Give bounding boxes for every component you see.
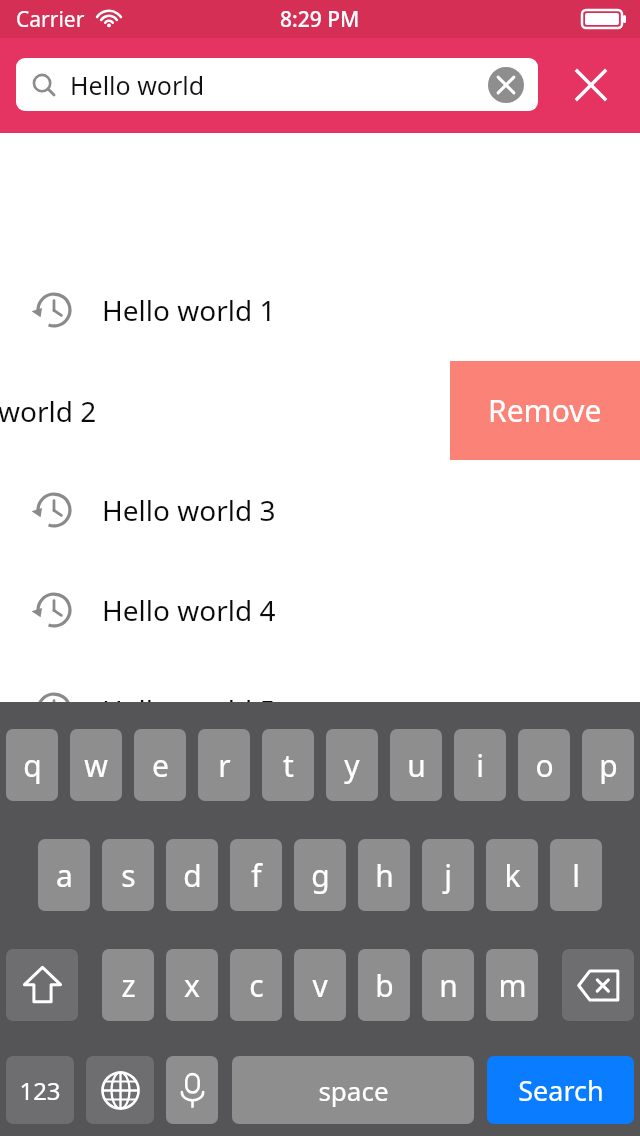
staticText: z — [121, 965, 136, 1006]
staticText: Hello world 3 — [102, 491, 276, 529]
button[interactable]: d — [166, 839, 218, 911]
staticText: space — [318, 1073, 389, 1108]
button[interactable]: Search — [487, 1056, 634, 1124]
button[interactable]: Backspace — [562, 949, 634, 1021]
staticText: 8:29 PM — [280, 5, 360, 34]
staticText: j — [444, 855, 452, 896]
button[interactable]: w — [70, 729, 122, 801]
staticText: p — [599, 745, 618, 786]
button[interactable]: x — [166, 949, 218, 1021]
button[interactable]: r — [198, 729, 250, 801]
staticText: Hello world — [70, 68, 488, 102]
button[interactable]: Hello world — [16, 58, 538, 111]
staticText: y — [344, 745, 360, 786]
button[interactable]: s — [102, 839, 154, 911]
button[interactable]: a — [38, 839, 90, 911]
staticText: s — [121, 855, 136, 896]
staticText: u — [407, 745, 426, 786]
button[interactable]: y — [326, 729, 378, 801]
button[interactable]: p — [582, 729, 634, 801]
button[interactable]: i — [454, 729, 506, 801]
button[interactable]: Hello world 4 — [0, 577, 640, 643]
staticText: Search — [518, 1072, 604, 1109]
button[interactable]: l — [550, 839, 602, 911]
button[interactable]: Shift — [6, 949, 78, 1021]
staticText: Hello world 1 — [102, 291, 276, 329]
staticText: Remove — [488, 390, 602, 431]
button[interactable]: t — [262, 729, 314, 801]
button[interactable]: Hello world 5 — [0, 677, 640, 743]
button[interactable]: j — [422, 839, 474, 911]
staticText: h — [375, 855, 394, 896]
button[interactable]: e — [134, 729, 186, 801]
staticText: o — [535, 745, 554, 786]
staticText: g — [311, 855, 330, 896]
button[interactable]: z — [102, 949, 154, 1021]
staticText: f — [251, 855, 262, 896]
button[interactable]: 123 — [6, 1056, 74, 1124]
button[interactable]: Hello world 1 — [0, 277, 640, 343]
button[interactable]: Clear text — [488, 67, 524, 103]
staticText: Hello world 4 — [102, 591, 276, 629]
button[interactable]: Change keyboard — [86, 1056, 154, 1124]
staticText: t — [283, 745, 294, 786]
button[interactable]: m — [486, 949, 538, 1021]
button[interactable]: world 2 — [0, 392, 97, 430]
staticText: v — [312, 965, 328, 1006]
button[interactable]: v — [294, 949, 346, 1021]
button[interactable]: g — [294, 839, 346, 911]
staticText: e — [152, 745, 169, 786]
staticText: d — [183, 855, 202, 896]
staticText: n — [439, 965, 458, 1006]
staticText: Carrier — [16, 5, 85, 34]
button[interactable]: n — [422, 949, 474, 1021]
staticText: i — [476, 745, 484, 786]
staticText: b — [375, 965, 394, 1006]
button[interactable]: c — [230, 949, 282, 1021]
staticText: c — [249, 965, 264, 1006]
staticText: x — [184, 965, 200, 1006]
staticText: k — [504, 855, 521, 896]
button[interactable]: h — [358, 839, 410, 911]
button[interactable]: Voice input — [166, 1056, 218, 1124]
button[interactable]: k — [486, 839, 538, 911]
button[interactable]: space — [232, 1056, 474, 1124]
button[interactable]: Remove — [450, 361, 640, 460]
button[interactable]: b — [358, 949, 410, 1021]
staticText: l — [572, 855, 580, 896]
staticText: a — [56, 855, 73, 896]
button[interactable]: u — [390, 729, 442, 801]
button[interactable]: f — [230, 839, 282, 911]
staticText: 123 — [19, 1074, 61, 1107]
button[interactable]: Hello world 3 — [0, 477, 640, 543]
button[interactable]: Close search — [558, 52, 624, 118]
staticText: m — [498, 965, 527, 1006]
staticText: Hello world 5 — [102, 691, 276, 729]
button[interactable]: o — [518, 729, 570, 801]
staticText: r — [218, 745, 231, 786]
staticText: q — [23, 745, 42, 786]
staticText: w — [84, 745, 108, 786]
button[interactable]: q — [6, 729, 58, 801]
